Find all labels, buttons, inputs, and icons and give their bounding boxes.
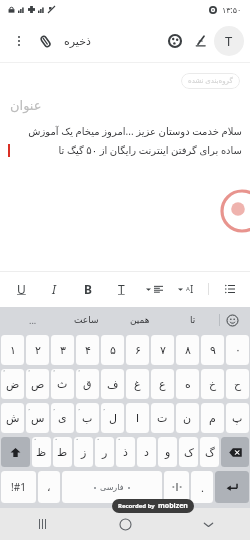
staticText: ۳ [60, 344, 66, 357]
button[interactable]: فارسی [62, 471, 162, 503]
button[interactable]: ٍ [101, 403, 124, 433]
staticText: عنوان [10, 98, 42, 113]
button[interactable]: پ [226, 403, 249, 433]
staticText: U [17, 281, 26, 297]
staticText: غ [134, 378, 141, 391]
staticText: ظ [36, 446, 47, 459]
button[interactable]: ۵ [101, 335, 124, 365]
button[interactable]: Recents [0, 508, 84, 540]
button[interactable]: ٍ [26, 403, 49, 433]
button[interactable]: Alignment [144, 283, 165, 296]
button[interactable]: Palette [162, 28, 188, 54]
staticText: د [144, 446, 149, 459]
staticText: ش [6, 412, 20, 425]
staticText: T [225, 32, 233, 50]
button[interactable]: ٌ [76, 369, 99, 399]
button[interactable]: ۹ [201, 335, 224, 365]
button[interactable]: More options [6, 28, 32, 54]
button[interactable]: ٍ [76, 403, 99, 433]
button[interactable]: عنوان [10, 98, 240, 113]
staticText: ح [234, 378, 242, 391]
button[interactable]: غ [126, 369, 149, 399]
button[interactable]: ک [179, 437, 198, 467]
staticText: ز [81, 446, 87, 459]
button[interactable]: ۷ [151, 335, 174, 365]
button[interactable]: . [191, 471, 213, 503]
button[interactable]: ۶ [126, 335, 149, 365]
button[interactable]: ش [1, 403, 24, 433]
button[interactable]: Backspace [221, 437, 249, 467]
button[interactable]: U [10, 278, 32, 300]
staticText: ، [47, 481, 51, 494]
button[interactable]: !#1 [1, 471, 36, 503]
button[interactable]: Text format [214, 26, 244, 56]
button[interactable]: ن [176, 403, 199, 433]
button[interactable]: ً [116, 437, 135, 467]
button[interactable]: ... [6, 307, 60, 333]
button[interactable]: تا [166, 307, 219, 333]
button[interactable]: ۳ [51, 335, 74, 365]
button[interactable]: ع [151, 369, 174, 399]
staticText: ۱۳:۵۰ [222, 4, 242, 15]
staticText: ۶ [135, 344, 141, 357]
staticText: ۹ [210, 344, 216, 357]
button[interactable]: B [77, 278, 99, 300]
button[interactable]: ذخیره [58, 31, 97, 52]
staticText: ۰ [235, 344, 241, 357]
button[interactable]: Attach [32, 28, 58, 54]
button[interactable]: ٌ [26, 369, 49, 399]
staticText: ب [82, 412, 93, 425]
button[interactable]: ساعت [60, 307, 113, 333]
button[interactable]: ً [53, 437, 72, 467]
staticText: ذ [123, 446, 128, 459]
button[interactable]: Emoji [220, 307, 244, 333]
button[interactable]: ، [38, 471, 60, 503]
button[interactable]: Move cursor [164, 471, 189, 503]
button[interactable]: List [220, 279, 240, 299]
button[interactable]: I [43, 278, 65, 300]
button[interactable]: ا [126, 403, 149, 433]
button[interactable]: ۴ [76, 335, 99, 365]
staticText: ۸ [185, 344, 191, 357]
button[interactable]: م [201, 403, 224, 433]
button[interactable]: گروه‌بندی نشده [181, 73, 240, 89]
staticText: ص [31, 378, 45, 391]
button[interactable]: Shift [1, 437, 30, 467]
button[interactable]: و [158, 437, 177, 467]
button[interactable]: ه [176, 369, 199, 399]
staticText: ف [107, 378, 119, 391]
button[interactable]: Font size [176, 280, 196, 298]
staticText: ض [6, 378, 20, 391]
button[interactable]: Home [84, 508, 167, 540]
button[interactable]: ً [95, 437, 114, 467]
staticText: همین [130, 315, 150, 325]
button[interactable]: ٍ [51, 403, 74, 433]
staticText: ک [184, 446, 194, 459]
staticText: B [84, 281, 92, 297]
button[interactable]: د [137, 437, 156, 467]
staticText: ث [57, 378, 68, 391]
staticText: فارسی [100, 483, 124, 492]
staticText: ل [109, 412, 117, 425]
button[interactable]: ۲ [26, 335, 49, 365]
button[interactable]: ح [226, 369, 249, 399]
button[interactable]: ۸ [176, 335, 199, 365]
button[interactable]: ٌ [51, 369, 74, 399]
staticText: خ [209, 378, 217, 391]
button[interactable]: ت [151, 403, 174, 433]
button[interactable]: خ [201, 369, 224, 399]
button[interactable]: ٌ [1, 369, 24, 399]
button[interactable]: همین [113, 307, 166, 333]
button[interactable]: سلام خدمت دوستان عزیز ...امروز میخام یک … [8, 124, 242, 157]
button[interactable]: گ [200, 437, 219, 467]
button[interactable]: ۰ [226, 335, 249, 365]
button[interactable]: T [110, 278, 132, 300]
button[interactable]: Draw [188, 28, 214, 54]
button[interactable]: Hide keyboard [167, 508, 250, 540]
staticText: سلام خدمت دوستان عزیز ...امروز میخام یک … [8, 124, 242, 138]
button[interactable]: ۱ [1, 335, 24, 365]
button[interactable]: ً [32, 437, 51, 467]
button[interactable]: ً [74, 437, 93, 467]
button[interactable]: Enter [215, 471, 249, 503]
button[interactable]: ف [101, 369, 124, 399]
